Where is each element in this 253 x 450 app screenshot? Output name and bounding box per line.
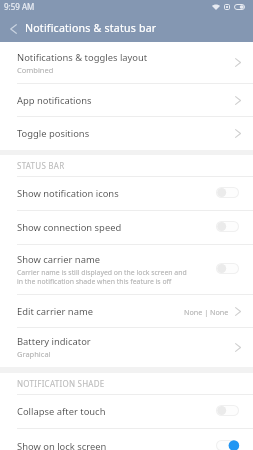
staticText: 9:59 AM — [4, 1, 35, 12]
button[interactable]: Toggle positions — [0, 117, 253, 149]
staticText: Graphical — [17, 349, 51, 359]
staticText: Toggle positions — [17, 127, 90, 140]
button[interactable]: Show notification icons — [0, 177, 253, 210]
staticText: Edit carrier name — [17, 305, 93, 318]
button[interactable]: Edit carrier name — [0, 295, 253, 328]
staticText: STATUS BAR — [17, 160, 65, 171]
staticText: None | None — [184, 307, 229, 317]
button[interactable]: Show connection speed — [0, 211, 253, 244]
button[interactable]: Battery indicator — [0, 328, 253, 366]
button[interactable]: Notifications & toggles layout — [0, 42, 253, 83]
staticText: App notifications — [17, 94, 92, 107]
button[interactable]: Show carrier name — [0, 245, 253, 294]
button[interactable]: Show on lock screen — [0, 429, 253, 450]
staticText: Combined — [17, 65, 54, 75]
button[interactable]: Back — [0, 16, 26, 42]
staticText: Show carrier name — [17, 253, 100, 266]
staticText: Battery indicator — [17, 335, 91, 348]
staticText: Show connection speed — [17, 221, 122, 234]
staticText: Carrier name is still displayed on the l… — [17, 268, 187, 286]
staticText: NOTIFICATION SHADE — [17, 378, 105, 389]
staticText: Collapse after touch — [17, 405, 106, 418]
staticText: Notifications & status bar — [25, 21, 157, 35]
staticText: Notifications & toggles layout — [17, 51, 148, 64]
staticText: Show on lock screen — [17, 440, 107, 450]
button[interactable]: Collapse after touch — [0, 395, 253, 428]
button[interactable]: App notifications — [0, 84, 253, 117]
staticText: Show notification icons — [17, 187, 119, 200]
